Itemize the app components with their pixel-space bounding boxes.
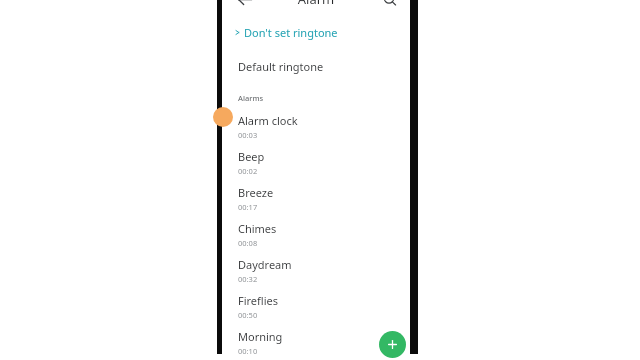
button[interactable]: Morning — [222, 326, 410, 360]
button[interactable]: Daydream — [222, 254, 410, 288]
button[interactable]: Chimes — [222, 218, 410, 252]
staticText: Alarms — [238, 93, 264, 103]
button[interactable]: Add — [379, 331, 406, 358]
staticText: Alarm — [222, 0, 410, 8]
staticText: Don't set ringtone — [244, 25, 338, 40]
staticText: 00:32 — [238, 274, 258, 284]
button[interactable]: Beep — [222, 146, 410, 180]
button[interactable]: Don't set ringtone — [222, 22, 410, 42]
staticText: 00:10 — [238, 346, 258, 356]
staticText: Daydream — [238, 257, 292, 272]
staticText: Beep — [238, 149, 265, 164]
button[interactable]: Fireflies — [222, 290, 410, 324]
button[interactable]: Alarm clock — [222, 110, 410, 144]
button[interactable]: Search — [380, 0, 400, 14]
button[interactable]: Default ringtone — [222, 56, 410, 76]
staticText: Fireflies — [238, 293, 279, 308]
button[interactable]: Breeze — [222, 182, 410, 216]
staticText: 00:02 — [238, 166, 258, 176]
staticText: 00:03 — [238, 130, 258, 140]
staticText: Default ringtone — [238, 59, 324, 74]
staticText: Morning — [238, 329, 283, 344]
staticText: Alarm clock — [238, 113, 298, 128]
staticText: Breeze — [238, 185, 274, 200]
staticText: 00:17 — [238, 202, 258, 212]
staticText: 00:50 — [238, 310, 258, 320]
staticText: Chimes — [238, 221, 277, 236]
staticText: 00:08 — [238, 238, 258, 248]
button[interactable]: Back — [234, 0, 256, 16]
